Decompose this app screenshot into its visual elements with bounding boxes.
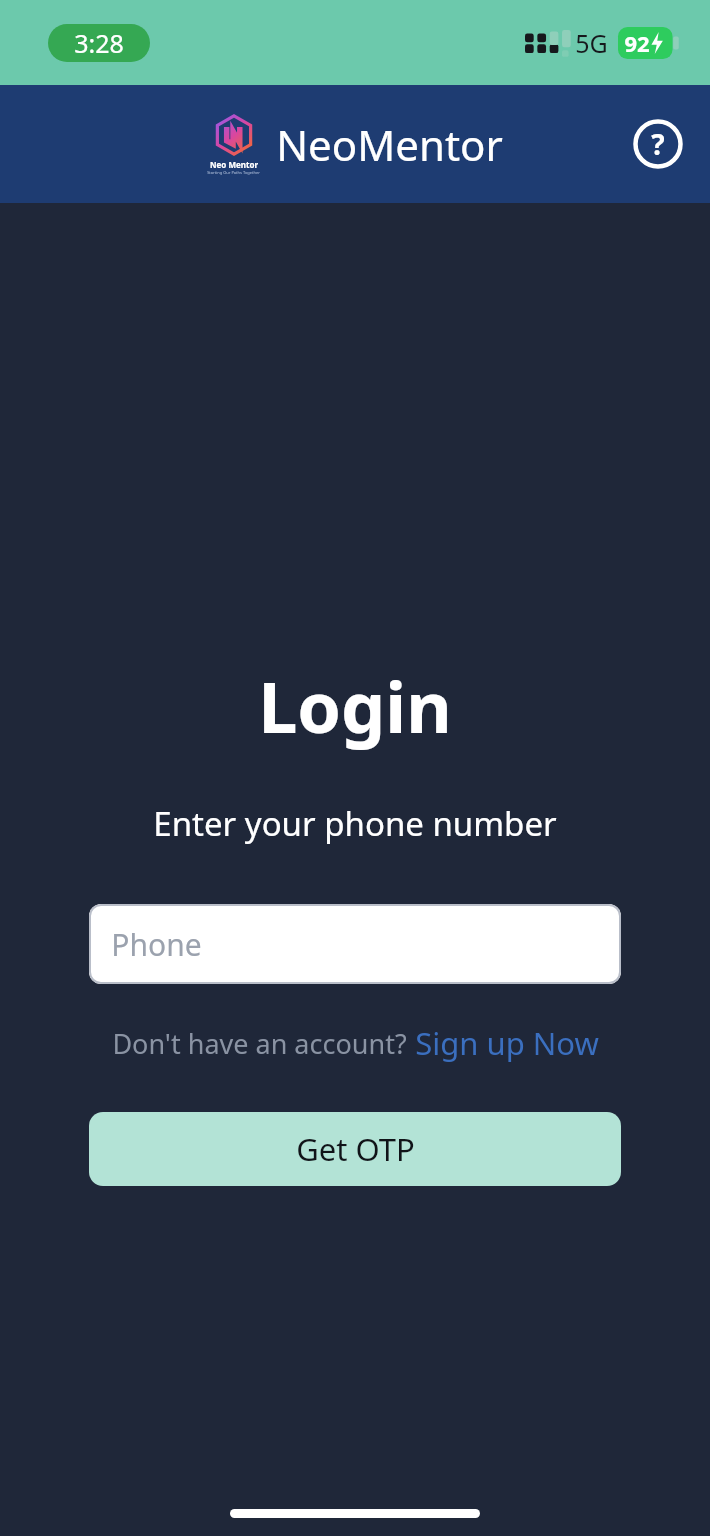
button[interactable]: Get OTP — [89, 1112, 621, 1186]
button[interactable]: Help — [630, 116, 686, 172]
staticText: Login — [258, 658, 452, 753]
button[interactable]: Sign up Now — [415, 1022, 599, 1064]
staticText: Starting Our Paths Together — [207, 170, 260, 175]
staticText: Don't have an account? — [112, 1025, 407, 1062]
button[interactable]: Phone — [89, 904, 621, 984]
staticText: Enter your phone number — [153, 801, 557, 846]
staticText: 92 — [624, 28, 650, 58]
staticText: ? — [651, 125, 665, 163]
staticText: Sign up Now — [415, 1022, 599, 1064]
staticText: 5G — [575, 26, 608, 60]
staticText: Get OTP — [296, 1128, 415, 1170]
staticText: Phone — [111, 924, 202, 965]
staticText: 3:28 — [74, 26, 124, 60]
staticText: NeoMentor — [276, 116, 503, 173]
staticText: Neo Mentor — [210, 159, 258, 170]
